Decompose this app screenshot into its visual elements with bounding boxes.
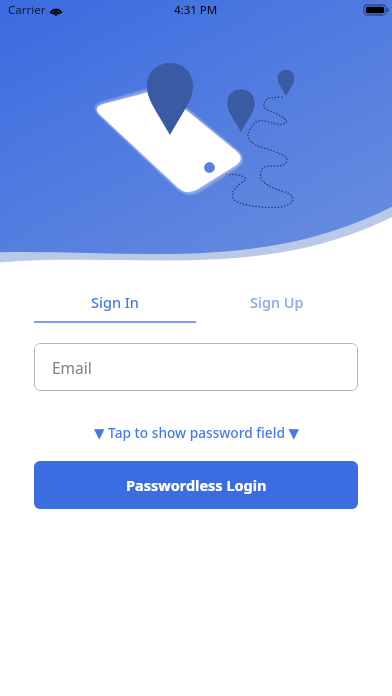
staticText: ▼ Tap to show password field ▼: [94, 423, 299, 442]
staticText: Sign In: [91, 292, 139, 312]
staticText: Passwordless Login: [126, 475, 267, 495]
button[interactable]: Email: [34, 343, 358, 391]
button[interactable]: Sign Up: [196, 283, 358, 323]
staticText: Email: [52, 357, 92, 378]
staticText: Carrier: [8, 2, 46, 18]
staticText: Sign Up: [250, 292, 304, 312]
button[interactable]: Passwordless Login: [34, 461, 358, 509]
button[interactable]: Sign In: [34, 283, 196, 323]
staticText: 4:31 PM: [174, 2, 218, 18]
button[interactable]: ▼ Tap to show password field ▼: [0, 419, 392, 445]
